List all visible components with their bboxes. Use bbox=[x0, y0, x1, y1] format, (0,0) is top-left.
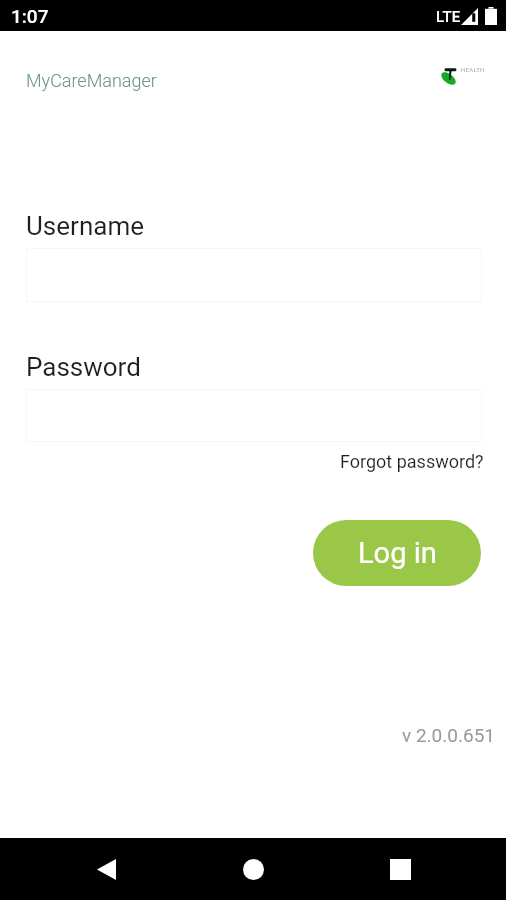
button[interactable]: Recent apps bbox=[372, 841, 428, 897]
staticText: Password bbox=[26, 352, 141, 382]
staticText: v 2.0.0.651 bbox=[402, 724, 496, 746]
staticText: LTE bbox=[436, 8, 461, 26]
staticText: MyCareManager bbox=[26, 70, 157, 91]
staticText: 1:07 bbox=[11, 5, 49, 27]
staticText: HEALTH bbox=[461, 66, 485, 73]
staticText: Log in bbox=[358, 536, 437, 570]
button[interactable]: Home bbox=[225, 841, 281, 897]
button[interactable]: Log in bbox=[313, 520, 481, 586]
button[interactable]: Forgot password? bbox=[334, 447, 490, 476]
staticText: Username bbox=[26, 211, 144, 241]
button[interactable]: Back bbox=[78, 841, 134, 897]
staticText: Forgot password? bbox=[340, 451, 484, 472]
